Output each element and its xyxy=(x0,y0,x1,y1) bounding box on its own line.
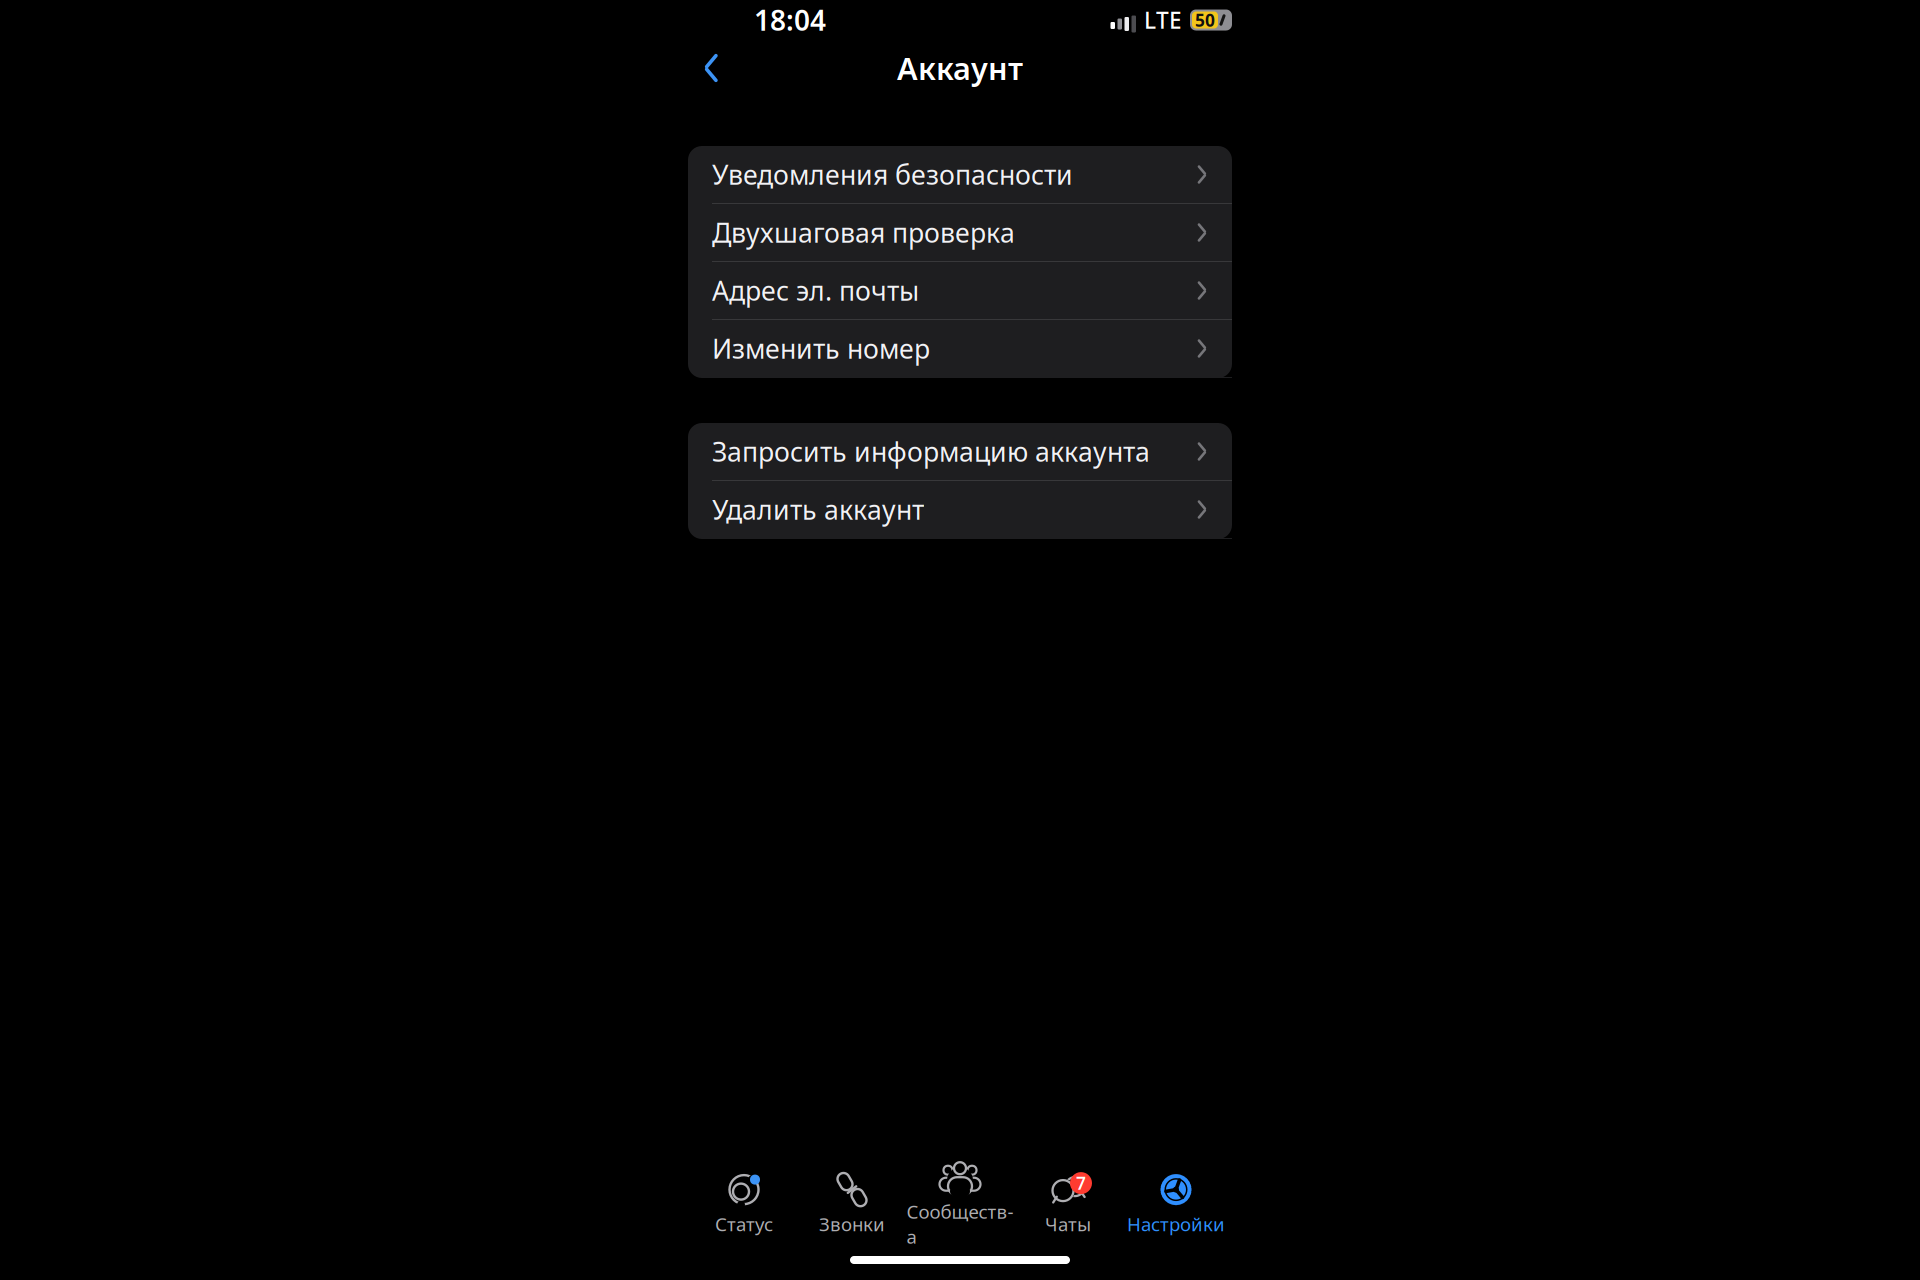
staticText: Уведомления безопасности xyxy=(712,157,1073,192)
button[interactable]: Изменить номер xyxy=(688,320,1232,378)
button[interactable]: Уведомления безопасности xyxy=(688,146,1232,204)
staticText: Удалить аккаунт xyxy=(712,492,924,527)
staticText: Запросить информацию аккаунта xyxy=(712,434,1150,469)
staticText: LTE xyxy=(1144,5,1182,35)
staticText: Аккаунт xyxy=(897,48,1023,88)
button[interactable]: Адрес эл. почты xyxy=(688,262,1232,320)
button[interactable]: 7 xyxy=(1014,1172,1122,1236)
button[interactable]: Двухшаговая проверка xyxy=(688,204,1232,262)
button[interactable]: Настройки xyxy=(1122,1172,1230,1236)
staticText: Звонки xyxy=(819,1212,885,1236)
button[interactable]: Назад xyxy=(688,44,735,91)
staticText: Чаты xyxy=(1045,1212,1091,1236)
button[interactable]: Сообщества xyxy=(906,1159,1014,1249)
staticText: 50 xyxy=(1195,8,1215,31)
button[interactable]: Запросить информацию аккаунта xyxy=(688,423,1232,481)
button[interactable]: Звонки xyxy=(798,1172,906,1236)
staticText: Адрес эл. почты xyxy=(712,273,919,308)
staticText: Двухшаговая проверка xyxy=(712,215,1015,250)
staticText: Статус xyxy=(715,1212,773,1236)
staticText: Настройки xyxy=(1127,1212,1225,1236)
staticText: 18:04 xyxy=(754,1,826,39)
button[interactable]: Удалить аккаунт xyxy=(688,481,1232,539)
staticText: 7 xyxy=(1076,1172,1086,1195)
staticText: Сообщества xyxy=(906,1199,1013,1249)
button[interactable]: Статус xyxy=(690,1172,798,1236)
staticText: Изменить номер xyxy=(712,331,930,366)
